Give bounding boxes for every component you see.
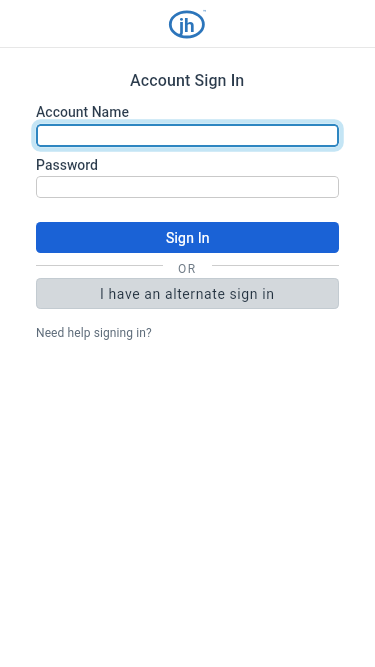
staticText: Account Sign In bbox=[130, 71, 245, 90]
button[interactable]: Need help signing in? bbox=[36, 326, 152, 340]
button[interactable]: I have an alternate sign in bbox=[36, 278, 339, 309]
staticText: Sign In bbox=[166, 230, 210, 246]
staticText: jh bbox=[179, 14, 195, 36]
staticText: OR bbox=[178, 262, 197, 276]
staticText: Need help signing in? bbox=[36, 326, 152, 340]
staticText: Account Name bbox=[36, 104, 129, 120]
button[interactable]: Sign In bbox=[36, 222, 339, 253]
staticText: ™ bbox=[203, 8, 207, 15]
button[interactable] bbox=[36, 124, 339, 147]
staticText: Password bbox=[36, 157, 99, 173]
staticText: I have an alternate sign in bbox=[100, 286, 275, 302]
button[interactable] bbox=[36, 176, 339, 198]
